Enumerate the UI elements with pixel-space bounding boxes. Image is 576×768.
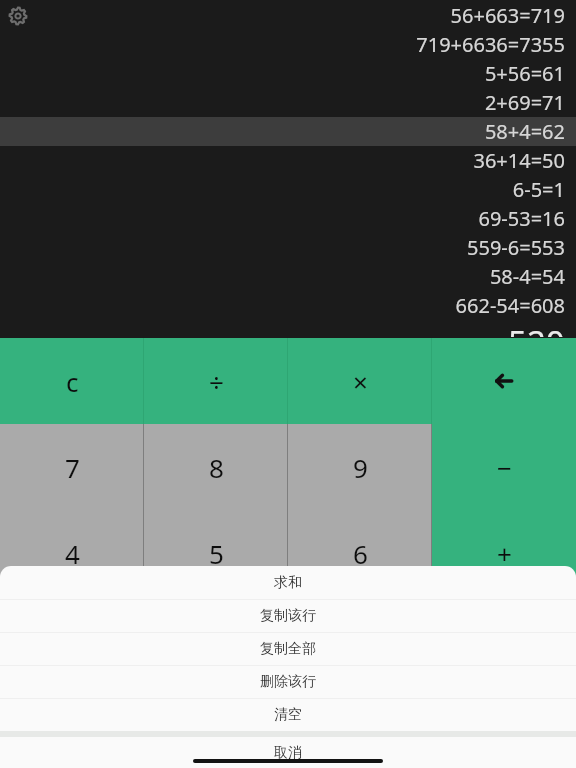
button[interactable]: 56+663=719 (0, 1, 576, 30)
button[interactable]: 58+4=62 (0, 117, 576, 146)
button[interactable]: 559-6=553 (0, 233, 576, 262)
button[interactable]: 2 (144, 596, 288, 682)
staticText: 7 (65, 450, 80, 485)
staticText: 6 (353, 536, 368, 571)
staticText: 删除该行 (260, 673, 316, 691)
staticText: − (497, 450, 512, 485)
button[interactable]: 取消 (0, 737, 576, 768)
button[interactable]: 4 (0, 510, 144, 596)
button[interactable]: 0 (0, 682, 144, 768)
staticText: 复制该行 (260, 607, 316, 625)
staticText: 520 (508, 320, 565, 337)
staticText: 36+14=50 (473, 147, 565, 174)
button[interactable]: + (432, 510, 576, 596)
button[interactable]: × (288, 338, 432, 424)
button[interactable]: − (432, 424, 576, 510)
button[interactable]: 58-4=54 (0, 262, 576, 291)
staticText: 清空 (274, 706, 302, 724)
staticText: 69-53=16 (478, 205, 565, 232)
button[interactable]: 3 (288, 596, 432, 682)
staticText: 0 (65, 708, 80, 743)
staticText: 取消 (274, 744, 302, 762)
staticText: 5 (209, 536, 224, 571)
button[interactable]: 7 (0, 424, 144, 510)
button[interactable]: 662-54=608 (0, 291, 576, 320)
button[interactable]: Backspace (432, 338, 576, 424)
staticText: 4 (65, 536, 80, 571)
staticText: 8 (209, 450, 224, 485)
staticText: . (213, 708, 220, 743)
staticText: × (353, 364, 368, 399)
button[interactable]: 清空 (0, 699, 576, 731)
staticText: 2+69=71 (484, 89, 565, 116)
button[interactable]: ÷ (144, 338, 288, 424)
staticText: 58+4=62 (484, 118, 565, 145)
staticText: 719+6636=7355 (416, 31, 565, 58)
button[interactable]: 求和 (0, 566, 576, 599)
staticText: c (66, 364, 79, 399)
button[interactable]: 719+6636=7355 (0, 30, 576, 59)
staticText: 00 (347, 710, 373, 740)
button[interactable]: Settings (5, 3, 31, 29)
staticText: ÷ (209, 364, 224, 399)
staticText: 56+663=719 (450, 2, 565, 29)
button[interactable]: 删除该行 (0, 666, 576, 698)
button[interactable]: % (432, 682, 576, 768)
button[interactable]: 5+56=61 (0, 59, 576, 88)
button[interactable]: 2+69=71 (0, 88, 576, 117)
button[interactable]: . (144, 682, 288, 768)
button[interactable]: c (0, 338, 144, 424)
button[interactable]: 8 (144, 424, 288, 510)
staticText: 58-4=54 (489, 263, 565, 290)
staticText: 5+56=61 (484, 60, 565, 87)
staticText: % (493, 708, 515, 743)
button[interactable]: 6-5=1 (0, 175, 576, 204)
staticText: 559-6=553 (467, 234, 565, 261)
button[interactable]: 复制全部 (0, 633, 576, 665)
staticText: 求和 (274, 574, 302, 592)
button[interactable]: 6 (288, 510, 432, 596)
button[interactable]: 00 (288, 682, 432, 768)
staticText: 6-5=1 (512, 176, 565, 203)
staticText: + (497, 536, 512, 571)
button[interactable]: 69-53=16 (0, 204, 576, 233)
staticText: 复制全部 (260, 640, 316, 658)
button[interactable]: 36+14=50 (0, 146, 576, 175)
button[interactable]: 9 (288, 424, 432, 510)
button[interactable]: 复制该行 (0, 600, 576, 632)
staticText: 662-54=608 (455, 292, 565, 319)
button[interactable]: 5 (144, 510, 288, 596)
staticText: 9 (353, 450, 368, 485)
